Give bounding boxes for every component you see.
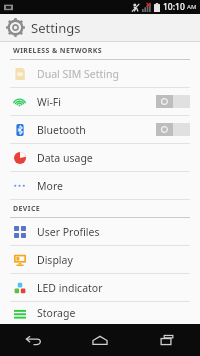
button[interactable]: Display bbox=[0, 246, 200, 273]
staticText: WIRELESS & NETWORKS bbox=[13, 46, 103, 56]
staticText: DEVICE bbox=[13, 204, 41, 214]
staticText: Settings bbox=[31, 19, 81, 37]
staticText: User Profiles bbox=[37, 225, 100, 239]
button[interactable]: Data usage bbox=[0, 144, 200, 171]
button[interactable]: Home bbox=[66, 324, 133, 356]
staticText: Wi-Fi bbox=[37, 95, 62, 109]
button[interactable]: Wi-Fi toggle bbox=[156, 95, 190, 108]
staticText: 10:10 bbox=[163, 1, 185, 13]
button[interactable]: User Profiles bbox=[0, 218, 200, 245]
button[interactable]: Recent apps bbox=[133, 324, 200, 356]
staticText: Display bbox=[37, 253, 73, 267]
button[interactable]: Bluetooth toggle bbox=[156, 123, 190, 136]
staticText: AM bbox=[187, 3, 197, 11]
button[interactable]: LED indicator bbox=[0, 274, 200, 301]
staticText: More bbox=[37, 179, 63, 193]
staticText: Bluetooth bbox=[37, 123, 86, 137]
button[interactable]: Dual SIM Setting bbox=[0, 60, 200, 87]
button[interactable]: More bbox=[0, 172, 200, 199]
button[interactable]: Settings bbox=[0, 14, 200, 41]
button[interactable]: Wi-Fi bbox=[0, 88, 200, 115]
button[interactable]: Back bbox=[0, 324, 66, 356]
staticText: LED indicator bbox=[37, 281, 103, 295]
button[interactable]: Bluetooth bbox=[0, 116, 200, 143]
staticText: Dual SIM Setting bbox=[37, 67, 119, 81]
button[interactable]: Storage bbox=[0, 302, 200, 324]
staticText: Data usage bbox=[37, 151, 93, 165]
staticText: Storage bbox=[37, 306, 76, 320]
